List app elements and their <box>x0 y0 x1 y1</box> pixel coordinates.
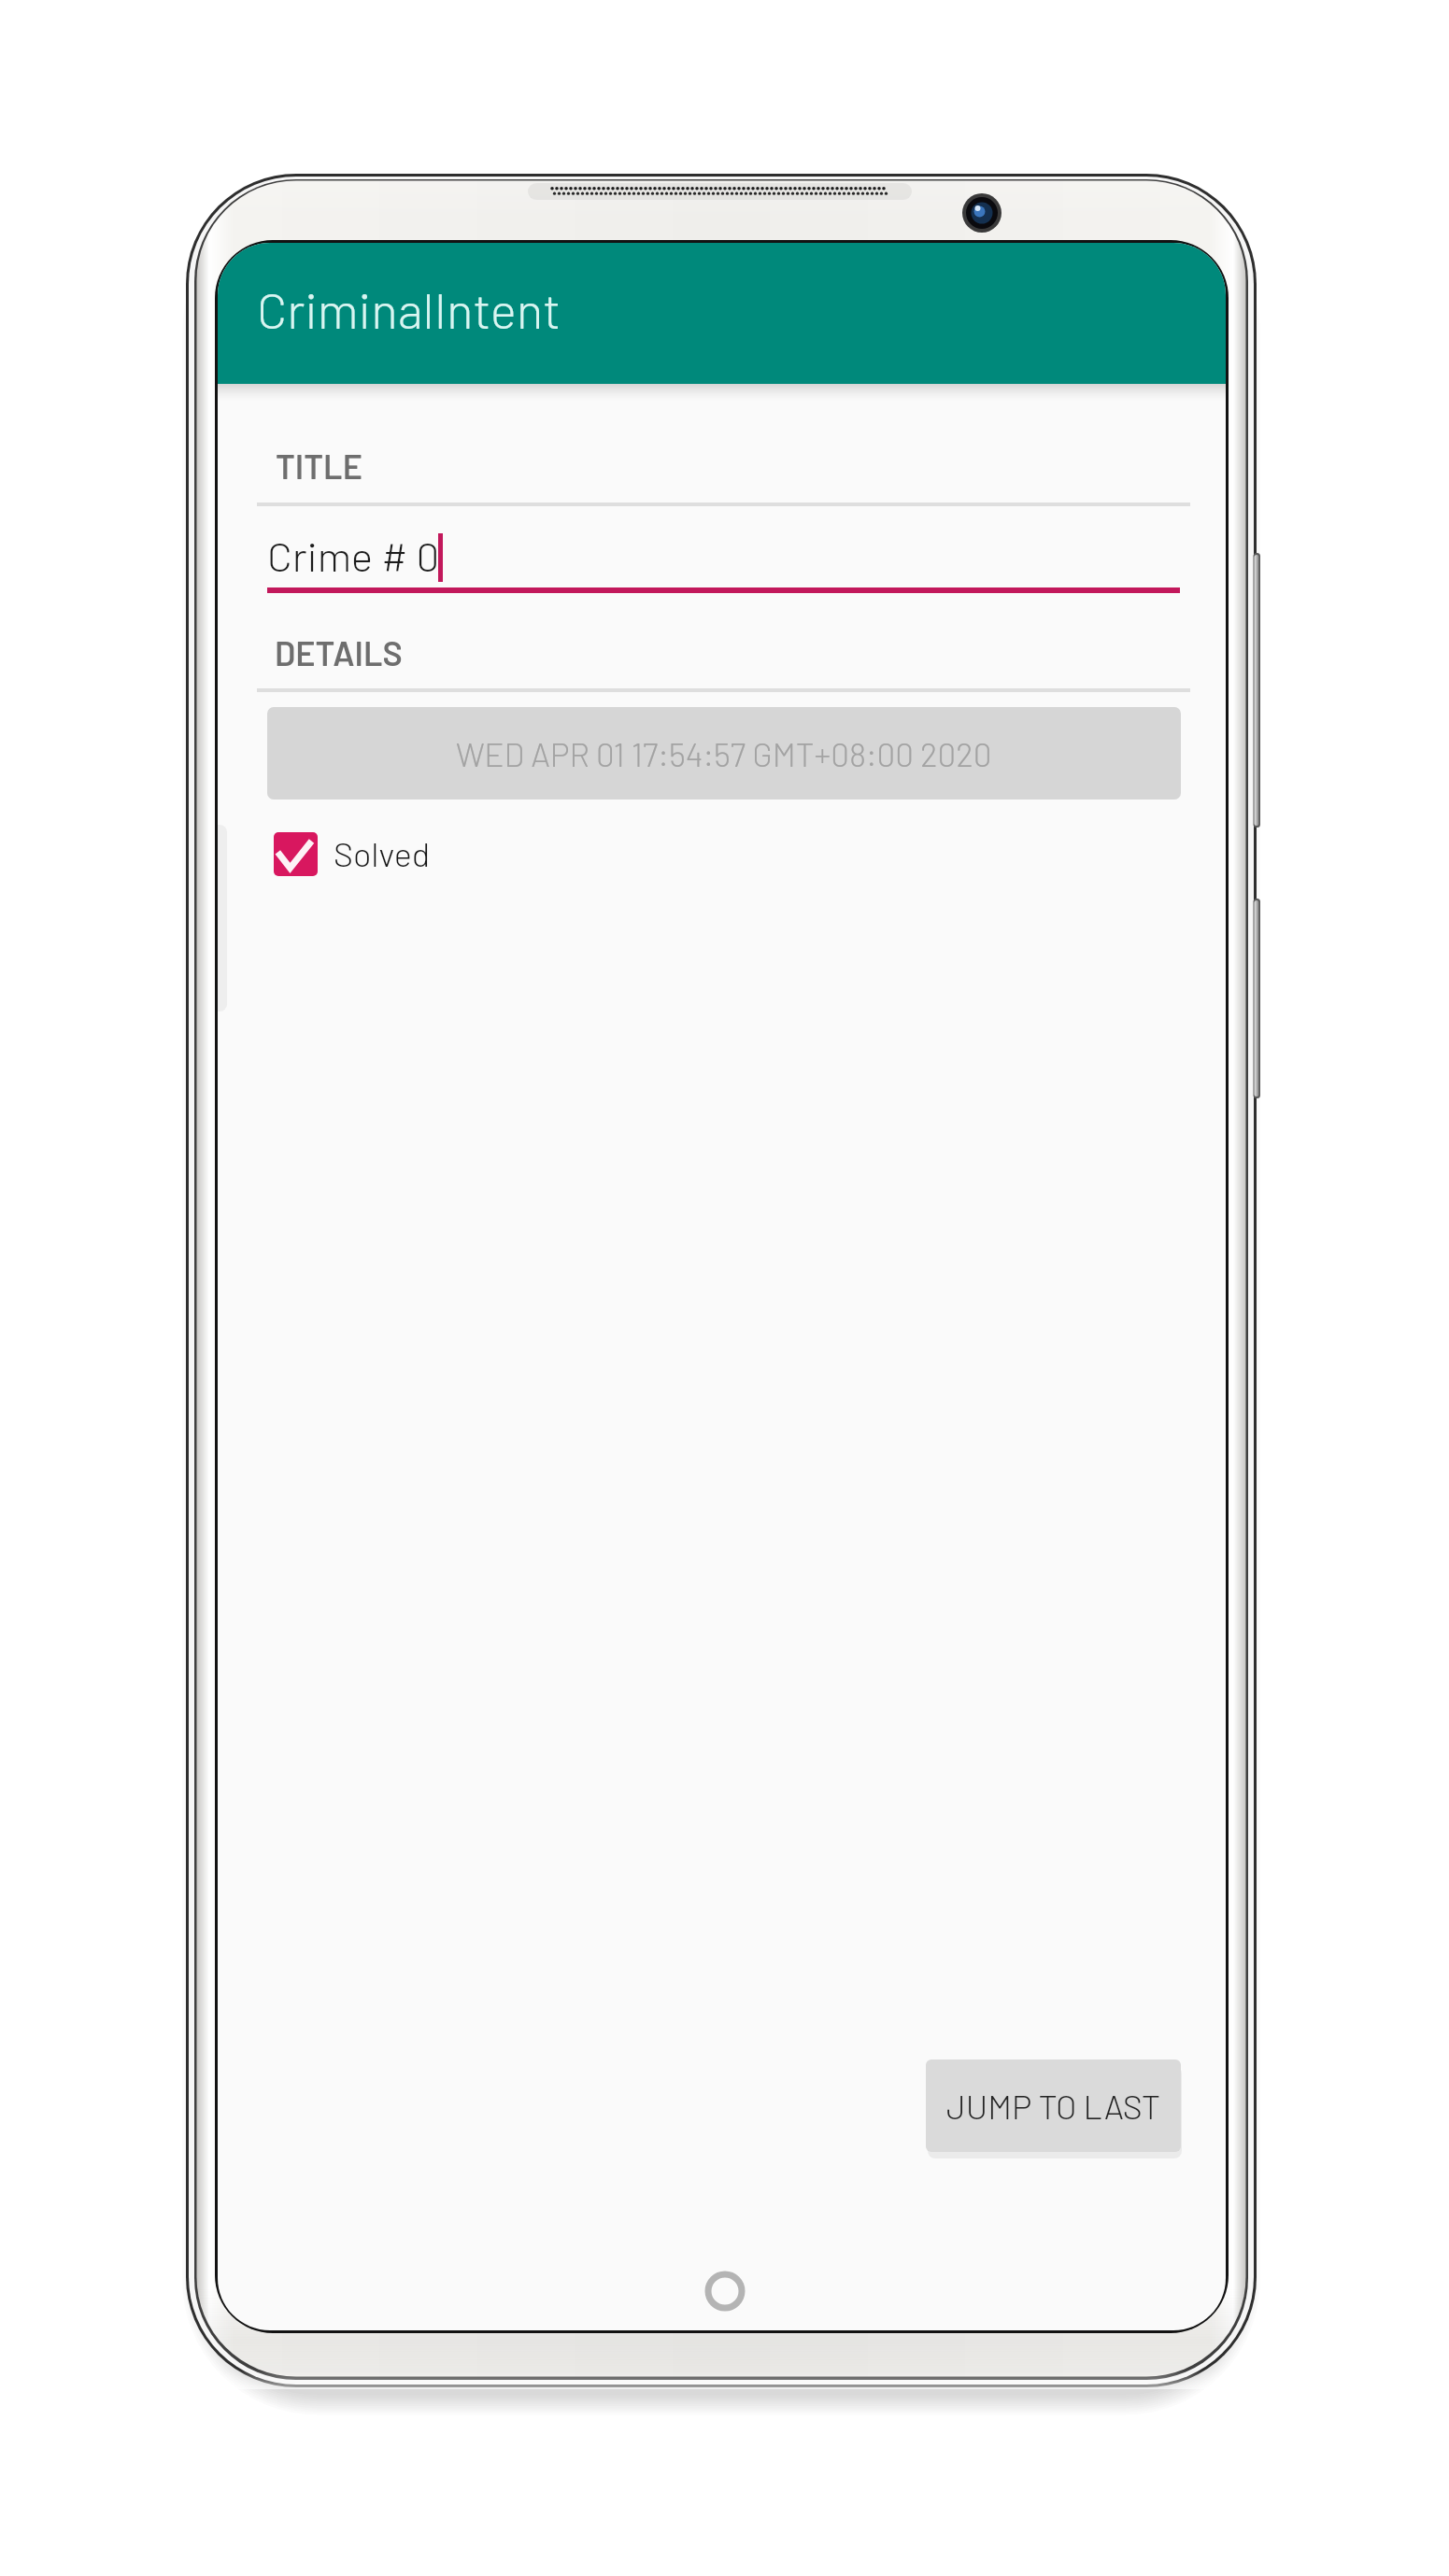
staticText: JUMP TO LAST <box>946 2086 1161 2126</box>
button[interactable]: Home <box>704 2271 746 2312</box>
button[interactable]: WED APR 01 17:54:57 GMT+08:00 2020 <box>267 707 1181 800</box>
button[interactable]: JUMP TO LAST <box>926 2059 1181 2152</box>
staticText: TITLE <box>276 446 362 486</box>
staticText: DETAILS <box>275 632 403 672</box>
button[interactable]: Crime title field <box>267 517 1180 593</box>
button[interactable]: Solved <box>274 832 431 876</box>
staticText: WED APR 01 17:54:57 GMT+08:00 2020 <box>456 734 992 773</box>
staticText: CriminalIntent <box>257 279 561 339</box>
staticText: Crime # 0 <box>267 531 440 580</box>
staticText: Solved <box>334 833 431 873</box>
